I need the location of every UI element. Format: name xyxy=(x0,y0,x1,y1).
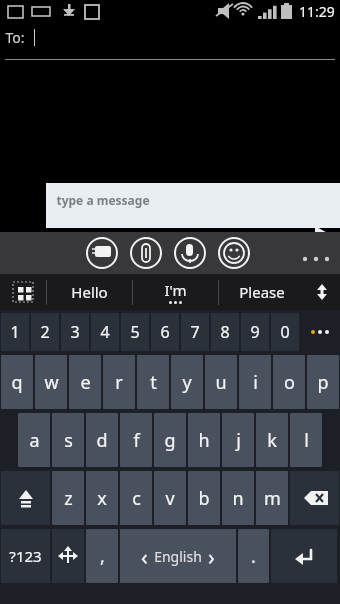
staticText: q xyxy=(11,370,23,395)
button[interactable]: n xyxy=(222,471,254,525)
staticText: k xyxy=(267,428,277,453)
button[interactable]: Hello xyxy=(47,274,132,310)
button[interactable]: a xyxy=(18,413,50,467)
staticText: 5 xyxy=(130,321,140,343)
staticText: t xyxy=(150,370,157,395)
staticText: › xyxy=(208,541,215,571)
button[interactable]: 6 xyxy=(151,313,179,351)
button[interactable]: type a message xyxy=(46,183,340,228)
button[interactable]: w xyxy=(35,355,67,409)
button[interactable]: q xyxy=(1,355,33,409)
button[interactable]: l xyxy=(290,413,322,467)
button[interactable]: 1 xyxy=(1,313,29,351)
staticText: r xyxy=(115,370,123,395)
button[interactable]: r xyxy=(103,355,135,409)
staticText: To: xyxy=(5,28,25,47)
button[interactable]: k xyxy=(256,413,288,467)
button[interactable]: Voice xyxy=(248,232,288,272)
button[interactable] xyxy=(300,312,340,352)
button[interactable]: Enter xyxy=(271,529,337,583)
button[interactable]: v xyxy=(154,471,186,525)
staticText: 11:29 xyxy=(299,2,335,21)
staticText: 2 xyxy=(40,321,50,343)
staticText: e xyxy=(80,370,91,395)
staticText: 6 xyxy=(160,321,170,343)
staticText: 8 xyxy=(220,321,230,343)
staticText: Hello xyxy=(71,282,108,302)
staticText: w xyxy=(44,370,59,395)
button[interactable]: I'm xyxy=(133,274,218,310)
button[interactable]: y xyxy=(171,355,203,409)
button[interactable]: 4 xyxy=(91,313,119,351)
staticText: m xyxy=(264,486,281,511)
staticText: s xyxy=(64,428,73,453)
button[interactable]: h xyxy=(188,413,220,467)
staticText: I'm xyxy=(164,280,187,300)
button[interactable]: j xyxy=(222,413,254,467)
button[interactable]: 9 xyxy=(241,313,269,351)
button[interactable]: m xyxy=(256,471,288,525)
button[interactable]: p xyxy=(307,355,339,409)
staticText: z xyxy=(64,486,73,511)
staticText: f xyxy=(133,428,140,453)
button[interactable]: c xyxy=(120,471,152,525)
staticText: 4 xyxy=(100,321,110,343)
staticText: u xyxy=(215,370,227,395)
button[interactable]: Attach xyxy=(164,232,204,272)
staticText: type a message xyxy=(56,192,150,208)
button[interactable]: e xyxy=(69,355,101,409)
button[interactable]: 7 xyxy=(181,313,209,351)
button[interactable]: g xyxy=(154,413,186,467)
button[interactable]: 5 xyxy=(121,313,149,351)
button[interactable]: 2 xyxy=(31,313,59,351)
button[interactable]: o xyxy=(273,355,305,409)
staticText: o xyxy=(284,370,295,395)
staticText: c xyxy=(132,486,141,511)
button[interactable]: ?123 xyxy=(1,529,50,583)
staticText: English xyxy=(154,547,202,566)
staticText: 0 xyxy=(280,321,290,343)
staticText: j xyxy=(236,428,241,453)
staticText: ?123 xyxy=(9,546,42,566)
staticText: h xyxy=(198,428,210,453)
staticText: i xyxy=(253,370,258,395)
button[interactable]: 0 xyxy=(271,313,299,351)
button[interactable]: Expand xyxy=(304,274,340,310)
staticText: 1 xyxy=(10,321,20,343)
button[interactable]: b xyxy=(188,471,220,525)
staticText: 3 xyxy=(70,321,80,343)
staticText: . xyxy=(251,544,256,569)
button[interactable]: t xyxy=(137,355,169,409)
button[interactable]: f xyxy=(120,413,152,467)
button[interactable]: Symbols xyxy=(0,274,46,310)
button[interactable]: Chat xyxy=(80,232,120,272)
button[interactable]: , xyxy=(86,529,118,583)
button[interactable]: . xyxy=(238,529,269,583)
staticText: a xyxy=(29,428,40,453)
button[interactable]: ‹ xyxy=(120,529,236,583)
staticText: n xyxy=(232,486,244,511)
button[interactable]: x xyxy=(86,471,118,525)
staticText: x xyxy=(97,486,107,511)
staticText: Please xyxy=(239,282,285,302)
staticText: p xyxy=(317,370,329,395)
staticText: y xyxy=(182,370,192,395)
button[interactable]: Please xyxy=(219,274,304,310)
button[interactable]: Backspace xyxy=(290,471,339,525)
button[interactable]: z xyxy=(52,471,84,525)
staticText: , xyxy=(100,544,105,569)
staticText: d xyxy=(96,428,108,453)
staticText: 7 xyxy=(190,321,200,343)
button[interactable]: u xyxy=(205,355,237,409)
button[interactable]: i xyxy=(239,355,271,409)
button[interactable]: s xyxy=(52,413,84,467)
staticText: ‹ xyxy=(141,541,148,571)
button[interactable]: Shift xyxy=(1,471,50,525)
button[interactable]: 8 xyxy=(211,313,239,351)
button[interactable]: Move cursor xyxy=(52,529,84,583)
staticText: g xyxy=(164,428,176,453)
staticText: v xyxy=(165,486,175,511)
button[interactable]: 3 xyxy=(61,313,89,351)
button[interactable]: d xyxy=(86,413,118,467)
